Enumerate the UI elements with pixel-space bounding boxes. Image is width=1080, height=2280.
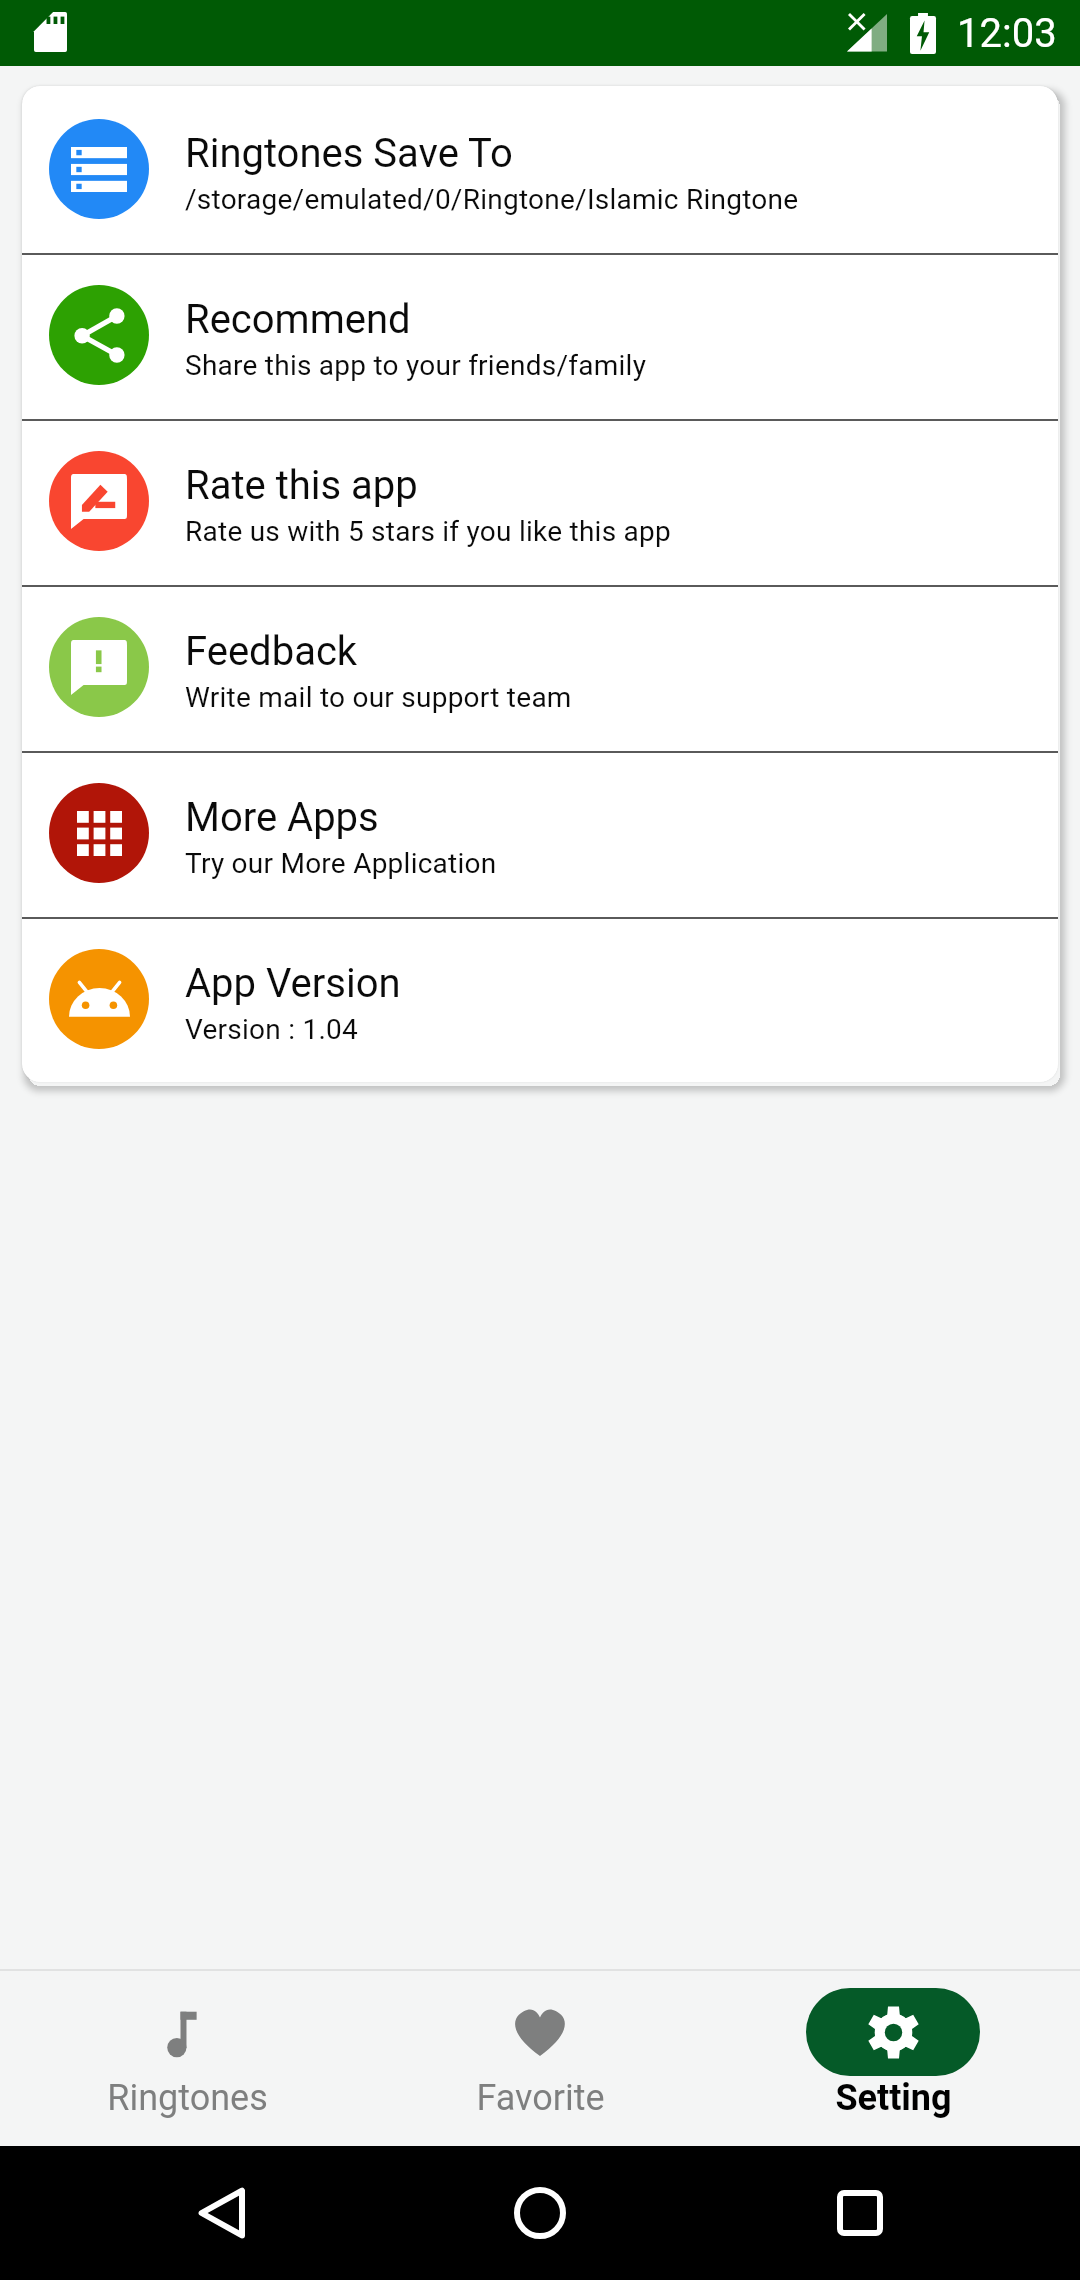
button[interactable]: Recommend <box>22 252 1058 418</box>
other: Home <box>514 2187 566 2239</box>
staticText: Setting <box>835 2077 952 2119</box>
staticText: Ringtones Save To <box>185 130 513 177</box>
other: Signal <box>847 12 887 56</box>
staticText: Version : 1.04 <box>185 1013 359 1046</box>
staticText: 12:03 <box>957 10 1057 57</box>
staticText: Share this app to your friends/family <box>185 349 647 382</box>
staticText: Try our More Application <box>185 847 497 880</box>
button[interactable]: Rate this app <box>22 418 1058 584</box>
staticText: Feedback <box>185 628 358 675</box>
other: SD card <box>34 12 67 52</box>
button[interactable]: App Version <box>22 916 1058 1082</box>
button[interactable]: Feedback <box>22 584 1058 750</box>
other: Battery charging <box>910 13 936 54</box>
staticText: Rate us with 5 stars if you like this ap… <box>185 515 671 548</box>
staticText: Write mail to our support team <box>185 681 572 714</box>
staticText: Recommend <box>185 296 411 343</box>
staticText: Ringtones <box>107 2077 268 2119</box>
staticText: Rate this app <box>185 462 418 509</box>
other: Back <box>198 2187 245 2239</box>
staticText: App Version <box>185 960 401 1007</box>
button[interactable]: More Apps <box>22 750 1058 916</box>
button[interactable]: Ringtones <box>11 1969 363 2146</box>
button[interactable]: Setting <box>716 1969 1069 2146</box>
other: Recents <box>837 2190 883 2236</box>
staticText: Favorite <box>476 2077 605 2119</box>
staticText: More Apps <box>185 794 379 841</box>
button[interactable]: Favorite <box>363 1969 716 2146</box>
staticText: /storage/emulated/0/Ringtone/Islamic Rin… <box>185 183 799 216</box>
button[interactable]: Ringtones Save To <box>22 86 1058 252</box>
